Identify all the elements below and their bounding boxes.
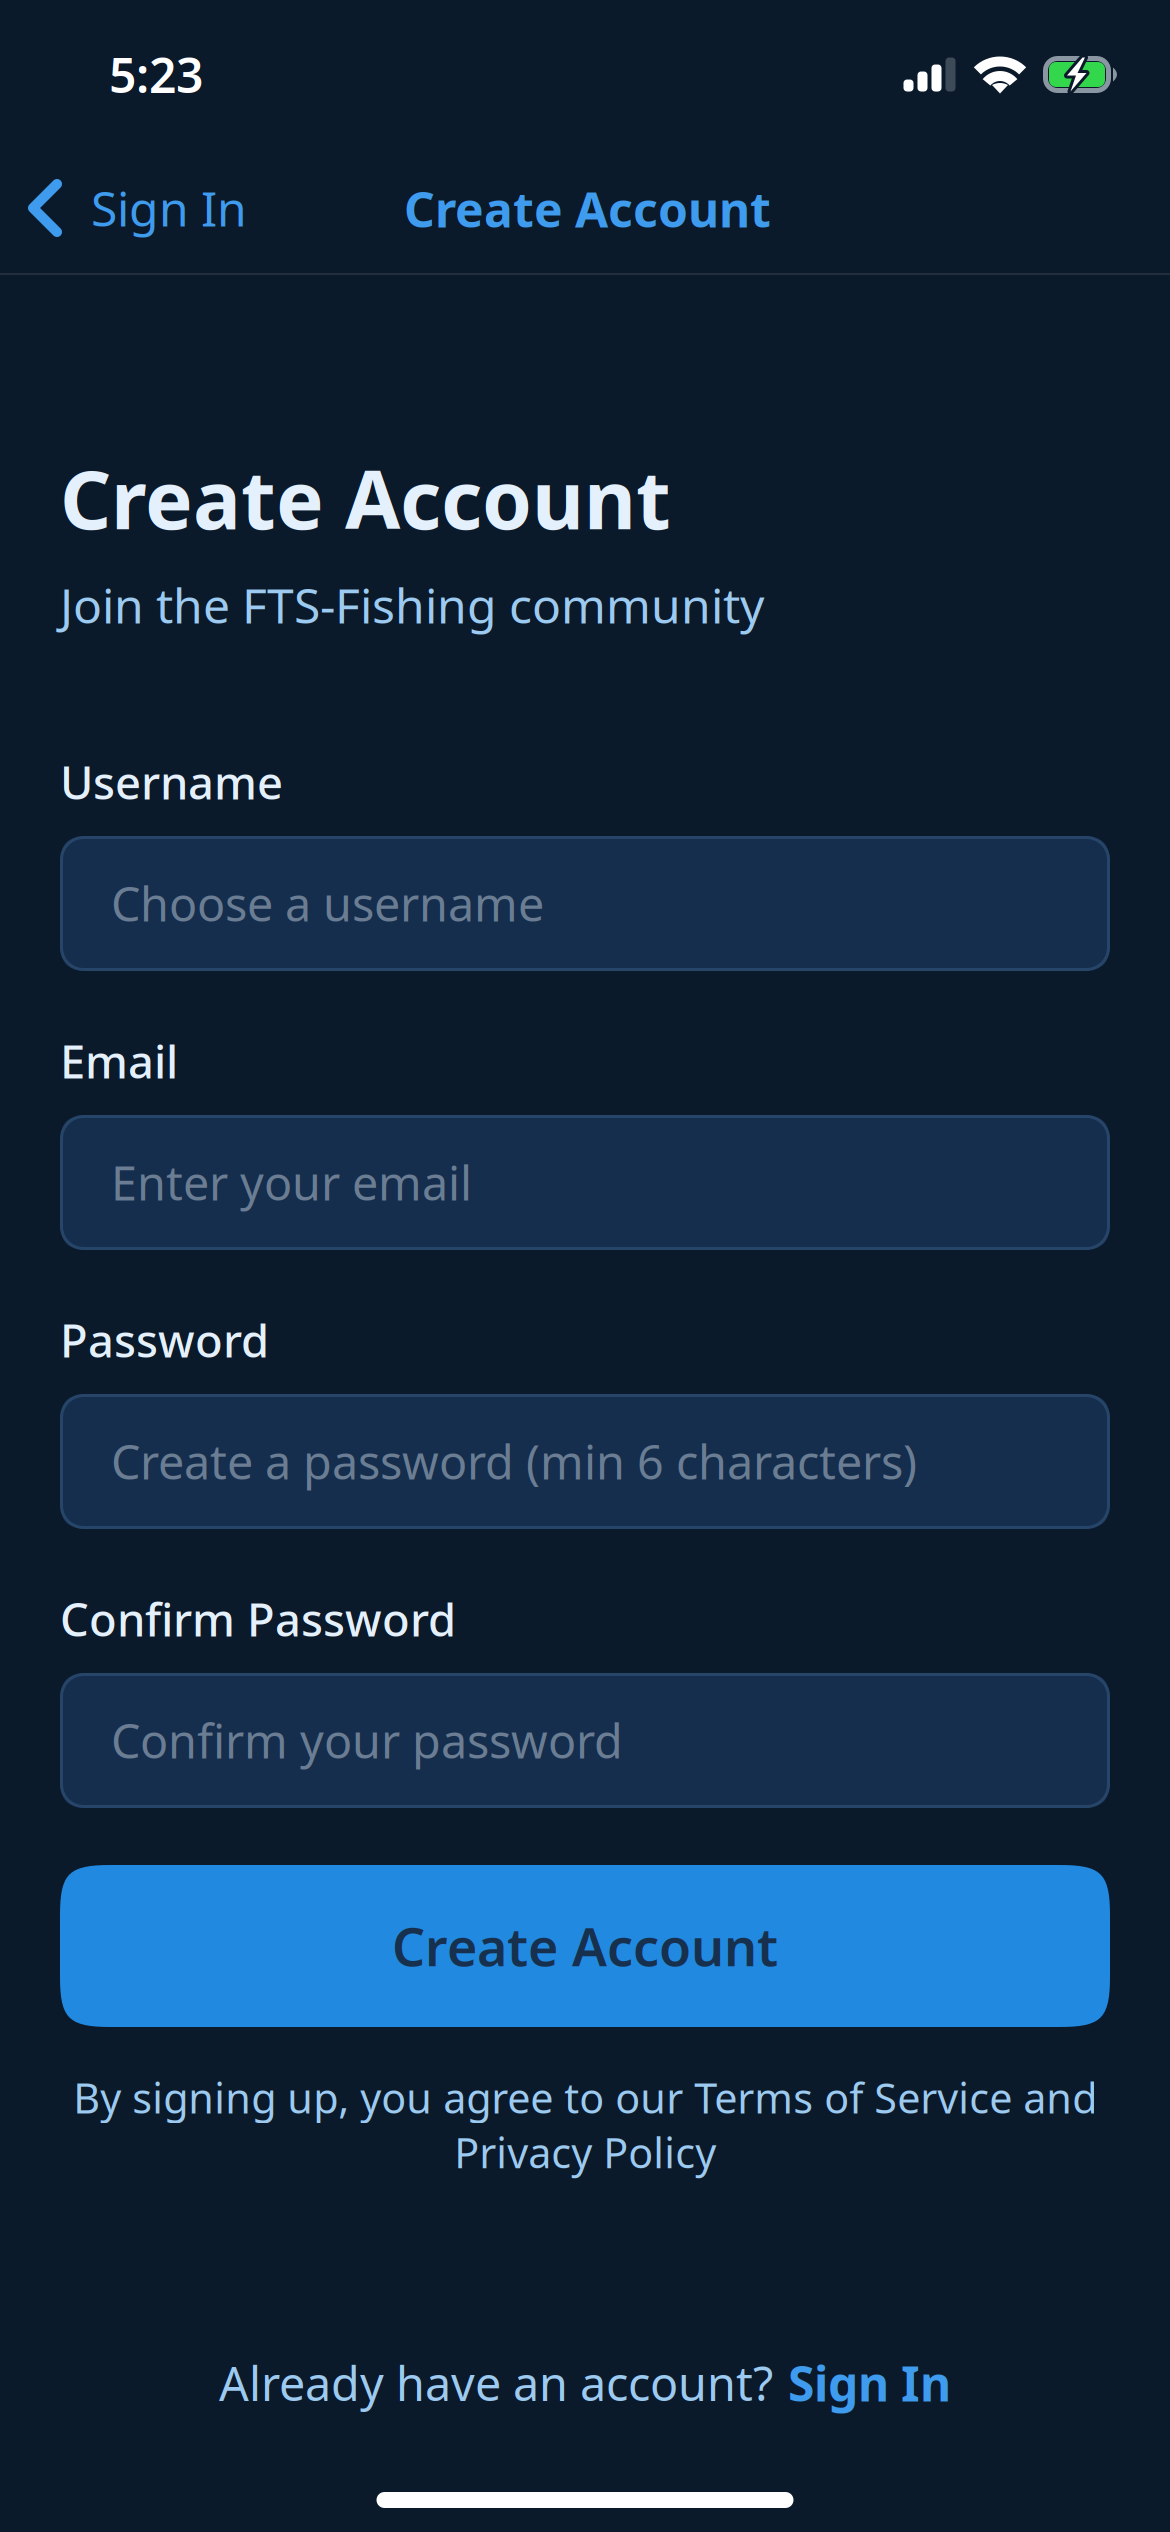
button[interactable]: Create Account bbox=[60, 1865, 1110, 2027]
staticText: Sign In bbox=[788, 2351, 951, 2415]
button[interactable]: Already have an account? bbox=[0, 2331, 1170, 2435]
button[interactable]: Password bbox=[60, 1394, 1110, 1529]
staticText: Email bbox=[60, 1031, 178, 1091]
staticText: Join the FTS-Fishing community bbox=[60, 573, 764, 637]
staticText: Confirm Password bbox=[60, 1589, 456, 1649]
button[interactable]: Sign In bbox=[0, 160, 330, 256]
staticText: Create Account bbox=[60, 445, 671, 551]
staticText: Sign In bbox=[91, 176, 247, 240]
staticText: Create Account bbox=[392, 1911, 778, 1981]
staticText: Create a password (min 6 characters) bbox=[111, 1430, 917, 1492]
staticText: Enter your email bbox=[111, 1151, 472, 1213]
button[interactable]: Email bbox=[60, 1115, 1110, 1250]
staticText: Username bbox=[60, 752, 283, 812]
staticText: By signing up, you agree to our Terms of… bbox=[73, 2070, 1097, 2180]
staticText: Create Account bbox=[404, 177, 771, 241]
staticText: Choose a username bbox=[111, 872, 544, 934]
staticText: Already have an account? bbox=[219, 2352, 773, 2414]
staticText: Password bbox=[60, 1310, 269, 1370]
staticText: 5:23 bbox=[109, 43, 203, 106]
staticText: Confirm your password bbox=[111, 1709, 623, 1771]
button[interactable]: Confirm Password bbox=[60, 1673, 1110, 1808]
button[interactable]: Username bbox=[60, 836, 1110, 971]
